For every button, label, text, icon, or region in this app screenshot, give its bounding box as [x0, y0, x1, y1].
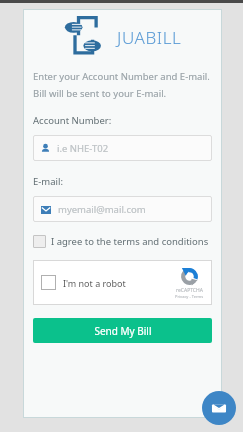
button[interactable]: Send My Bill: [33, 318, 212, 343]
button[interactable]: Contact us by email: [202, 391, 236, 425]
button[interactable]: myemail@mail.com: [33, 196, 212, 222]
staticText: i.e NHE-T02: [57, 142, 109, 155]
staticText: I'm not a robot: [63, 277, 126, 289]
button[interactable]: i.e NHE-T02: [33, 135, 212, 161]
staticText: E-mail:: [33, 175, 64, 188]
staticText: I agree to the terms and conditions: [51, 235, 209, 248]
staticText: Account Number:: [33, 114, 112, 127]
staticText: Privacy - Terms: [175, 294, 204, 299]
button[interactable]: I'm not a robot: [33, 260, 212, 305]
staticText: myemail@mail.com: [58, 203, 146, 216]
button[interactable]: I agree to the terms and conditions: [33, 235, 209, 248]
staticText: Send My Bill: [94, 324, 152, 338]
staticText: JUABILL: [117, 26, 182, 49]
staticText: Bill will be sent to your E-mail.: [33, 87, 167, 100]
staticText: Enter your Account Number and E-mail.: [33, 70, 210, 83]
staticText: reCAPTCHA: [176, 287, 203, 294]
